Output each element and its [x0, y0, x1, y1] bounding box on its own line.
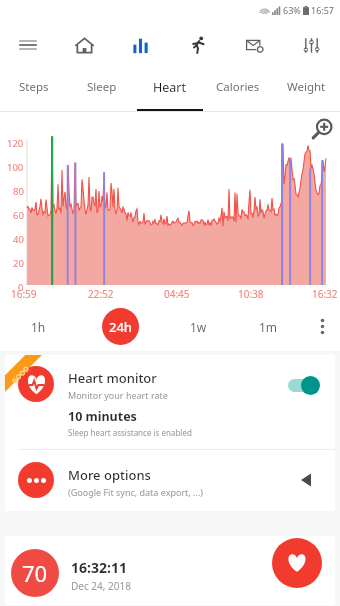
staticText: 40 — [13, 233, 24, 245]
button[interactable]: 1w — [174, 302, 222, 351]
button[interactable]: Home — [56, 20, 112, 70]
staticText: 04:45 — [164, 287, 190, 301]
staticText: 16:32:11 — [71, 558, 127, 577]
button[interactable] — [5, 536, 335, 605]
button[interactable]: More options — [304, 302, 340, 351]
button[interactable]: Steps — [0, 70, 68, 111]
button[interactable]: 1m — [244, 302, 292, 351]
staticText: Dec 24, 2018 — [71, 579, 131, 593]
staticText: 0 — [18, 281, 24, 293]
button[interactable]: Charts — [112, 20, 169, 70]
staticText: 1w — [190, 319, 207, 335]
button[interactable]: Heart monitor — [5, 355, 335, 449]
staticText: More options — [68, 466, 151, 484]
staticText: (Google Fit sync, data export, ...) — [68, 486, 204, 498]
staticText: 60 — [13, 209, 24, 221]
button[interactable]: 24h — [96, 302, 144, 351]
staticText: Heart — [153, 79, 187, 96]
staticText: Sleep — [87, 79, 117, 95]
button[interactable]: Calories — [204, 70, 272, 111]
button[interactable]: Weight — [272, 70, 340, 111]
staticText: Sleep heart assistance is enabled — [68, 427, 192, 438]
staticText: 80 — [13, 185, 24, 197]
staticText: 1h — [31, 319, 46, 335]
staticText: 22:52 — [88, 287, 114, 301]
staticText: 10 minutes — [68, 408, 137, 425]
staticText: 24h — [109, 318, 133, 336]
staticText: 1m — [259, 319, 278, 335]
button[interactable]: Measure heart rate — [272, 538, 322, 588]
button[interactable]: Heart — [136, 70, 204, 111]
staticText: Weight — [287, 79, 326, 95]
button[interactable]: 1h — [14, 302, 62, 351]
button[interactable]: More options — [5, 450, 335, 511]
staticText: 16:57 — [311, 4, 335, 16]
staticText: Monitor your heart rate — [68, 389, 168, 401]
staticText: Calories — [216, 79, 260, 95]
button[interactable]: Zoom in — [309, 116, 335, 142]
staticText: Steps — [19, 79, 49, 95]
button[interactable]: Activity — [169, 20, 226, 70]
staticText: 16:59 — [11, 287, 37, 301]
button[interactable]: Messages — [226, 20, 283, 70]
staticText: GOOD — [10, 364, 32, 386]
button[interactable]: Settings — [283, 20, 340, 70]
button[interactable]: Toggle heart monitor — [286, 374, 320, 396]
staticText: 16:32 — [312, 287, 338, 301]
staticText: 10:38 — [238, 287, 264, 301]
button[interactable]: Menu — [0, 20, 56, 70]
staticText: 63% — [283, 4, 301, 16]
staticText: 20 — [13, 257, 24, 269]
staticText: Heart monitor — [68, 369, 157, 387]
button[interactable]: Sleep — [68, 70, 136, 111]
staticText: 120 — [7, 137, 24, 149]
staticText: 70 — [22, 558, 48, 588]
staticText: 100 — [7, 161, 24, 173]
